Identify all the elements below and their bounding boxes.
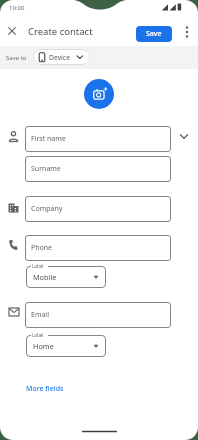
staticText: Surname — [31, 164, 61, 174]
button[interactable]: Mobile — [26, 266, 106, 288]
staticText: Email — [31, 310, 49, 320]
button[interactable]: Surname — [25, 156, 171, 182]
button[interactable]: Device — [33, 49, 90, 65]
staticText: Label — [32, 263, 44, 269]
button[interactable]: More fields — [26, 384, 64, 394]
button[interactable]: First name — [25, 126, 171, 152]
staticText: Device — [49, 53, 70, 62]
button[interactable] — [4, 23, 20, 39]
button[interactable] — [84, 79, 114, 109]
staticText: Mobile — [33, 272, 57, 282]
button[interactable]: Home — [26, 335, 106, 357]
button[interactable] — [181, 24, 193, 44]
button[interactable]: Company — [25, 196, 171, 222]
button[interactable]: Save — [136, 26, 172, 42]
button[interactable]: Phone — [25, 235, 171, 261]
staticText: 10:00 — [9, 4, 25, 12]
staticText: Label — [32, 332, 44, 338]
staticText: Save — [146, 29, 162, 39]
button[interactable]: Email — [25, 302, 171, 328]
staticText: Phone — [31, 243, 53, 253]
staticText: Create contact — [28, 25, 93, 38]
staticText: Home — [33, 341, 54, 351]
staticText: Save to — [6, 54, 27, 62]
staticText: First name — [31, 134, 66, 144]
staticText: Company — [31, 204, 63, 214]
